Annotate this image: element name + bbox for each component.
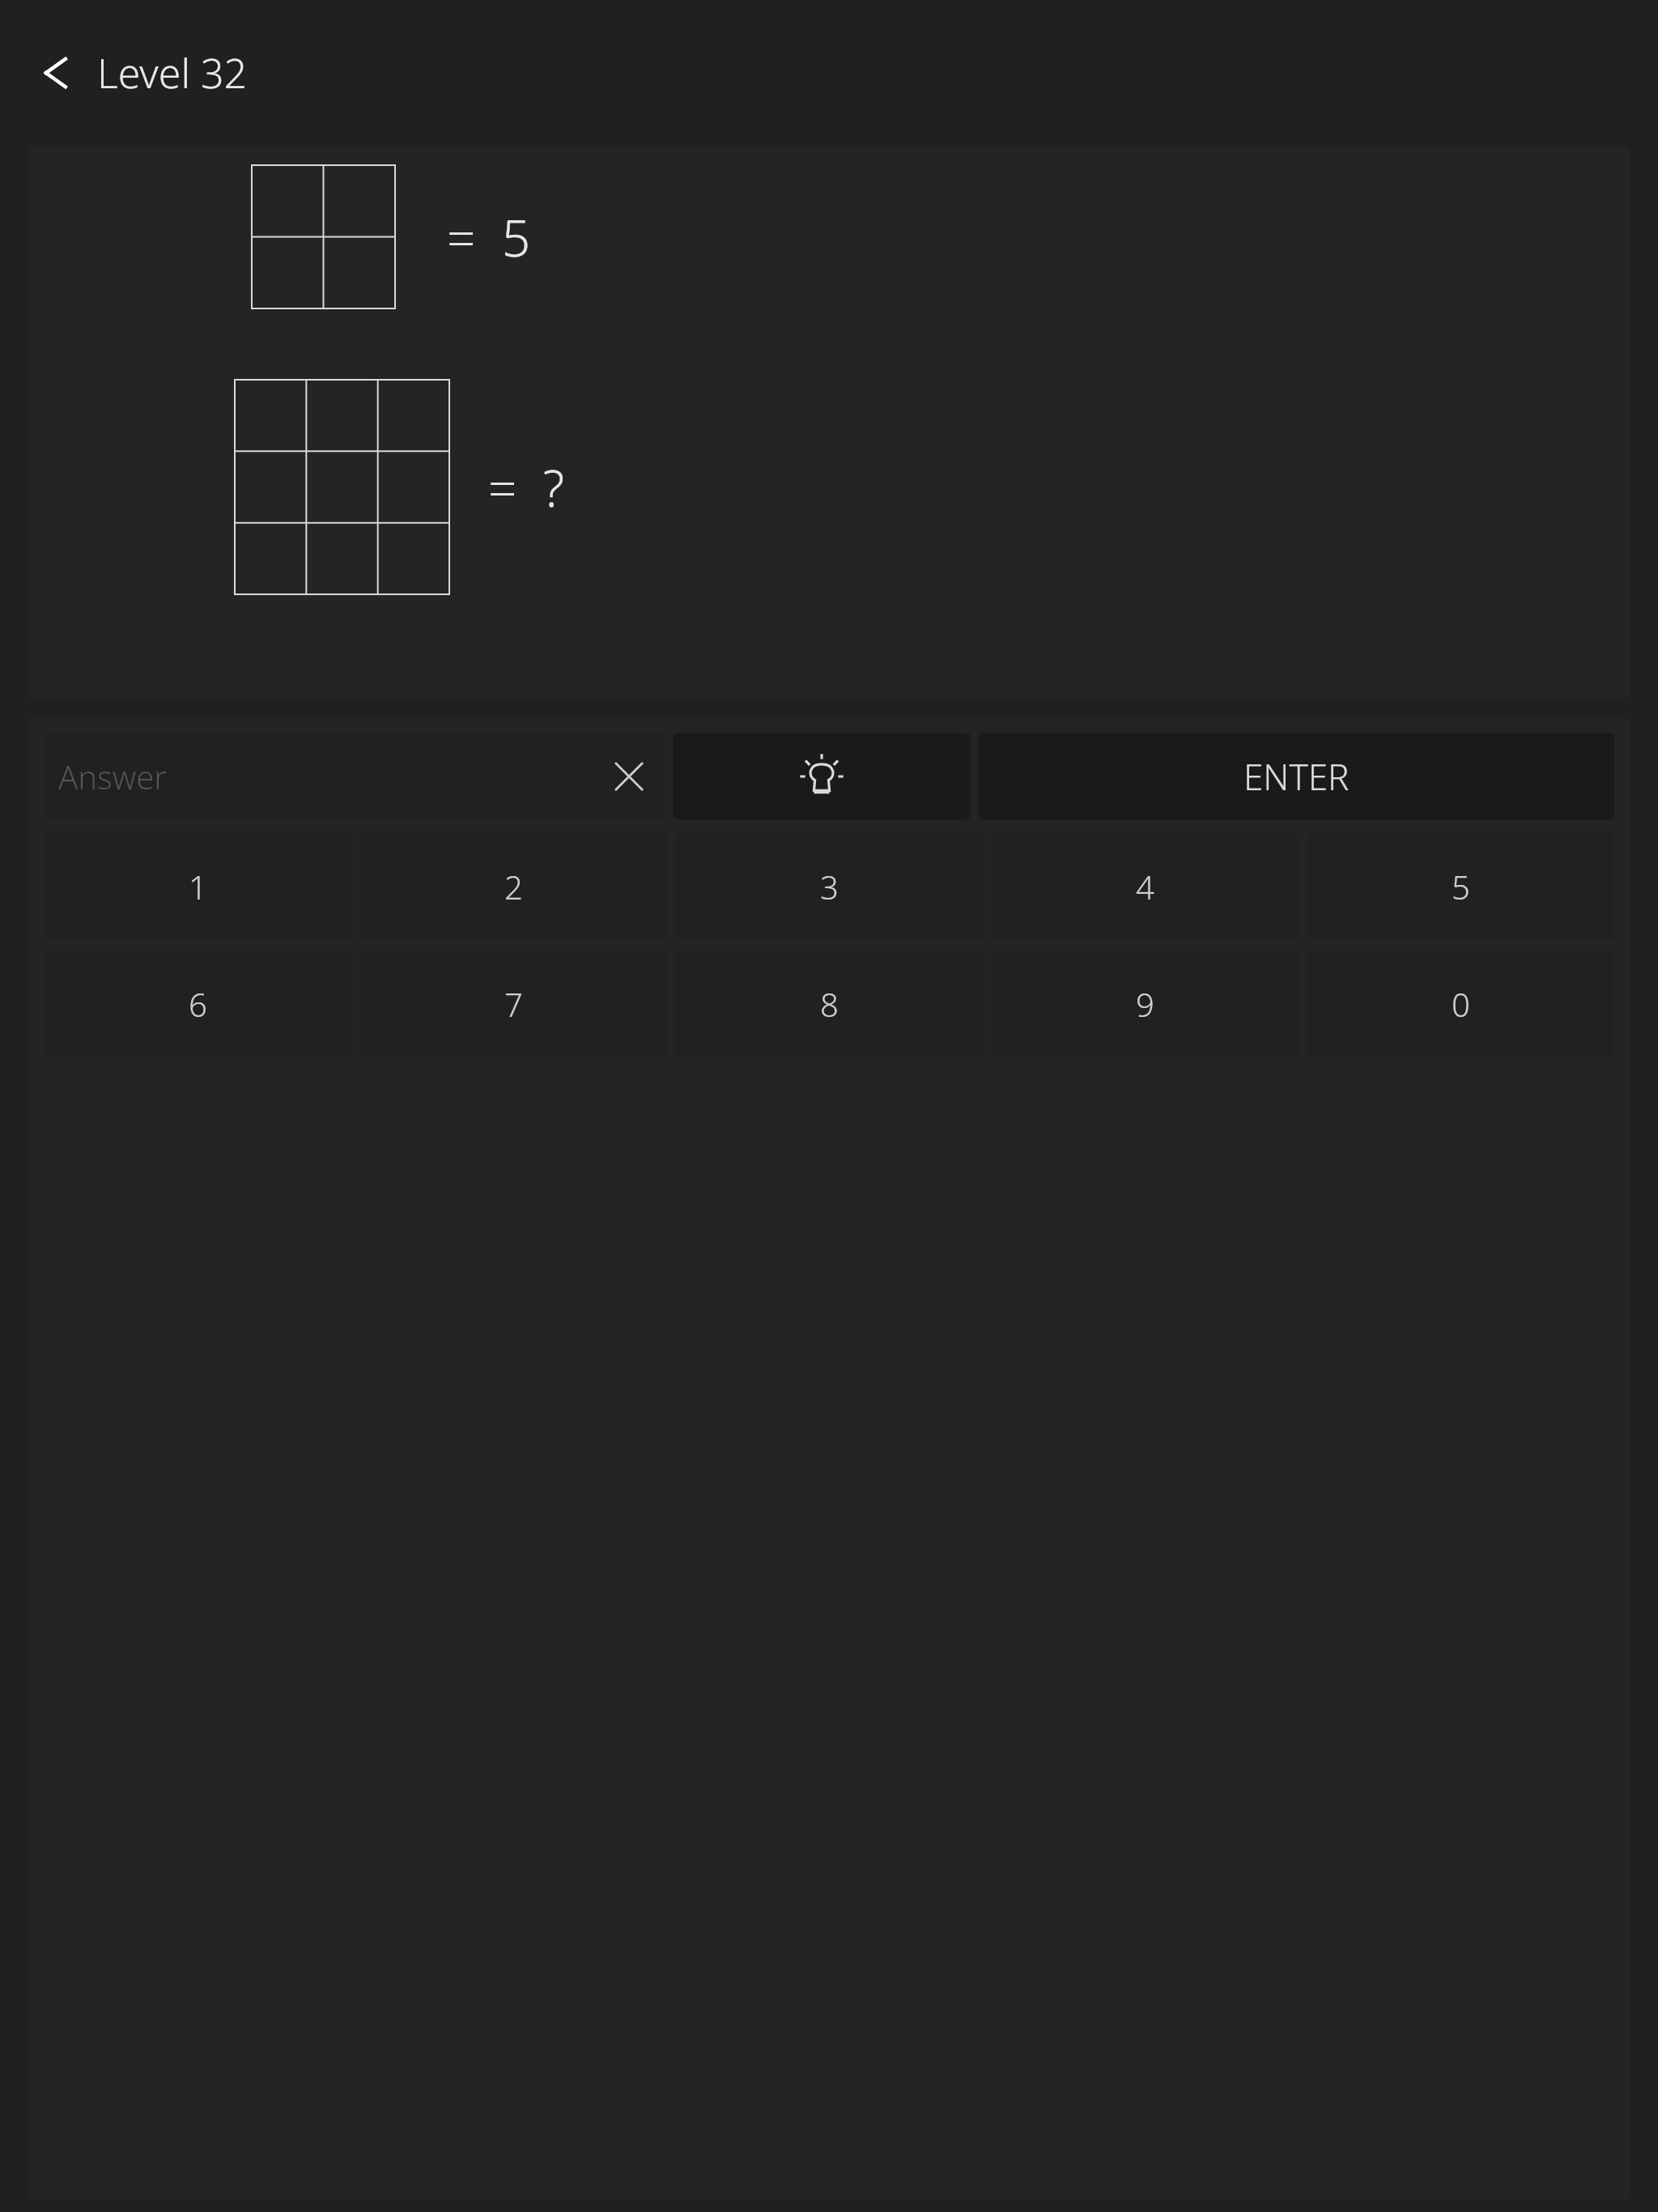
staticText: 5: [1452, 865, 1470, 908]
staticText: Level 32: [97, 45, 248, 100]
button[interactable]: 9: [991, 951, 1299, 1057]
staticText: 8: [820, 982, 839, 1026]
staticText: 0: [1452, 982, 1470, 1026]
button[interactable]: 8: [675, 951, 983, 1057]
staticText: = 5: [447, 203, 531, 271]
button[interactable]: ENTER: [979, 733, 1614, 819]
button[interactable]: 6: [44, 951, 351, 1057]
button[interactable]: 2: [359, 833, 667, 940]
button[interactable]: Back: [36, 50, 81, 96]
button[interactable]: 7: [359, 951, 667, 1057]
staticText: 4: [1136, 865, 1154, 908]
button[interactable]: 5: [1307, 833, 1614, 940]
button[interactable]: 0: [1307, 951, 1614, 1057]
button[interactable]: 1: [44, 833, 351, 940]
button[interactable]: Hint: [673, 733, 971, 819]
staticText: 9: [1136, 982, 1154, 1026]
staticText: 1: [189, 865, 207, 908]
button[interactable]: 3: [675, 833, 983, 940]
button[interactable]: 4: [991, 833, 1299, 940]
staticText: 6: [189, 982, 207, 1026]
staticText: ENTER: [1243, 752, 1350, 801]
button[interactable]: Answer: [44, 733, 665, 819]
staticText: 7: [504, 982, 523, 1026]
staticText: 3: [820, 865, 839, 908]
staticText: = ?: [488, 453, 564, 521]
button[interactable]: Clear answer: [608, 755, 650, 798]
staticText: 2: [504, 865, 523, 908]
staticText: Answer: [58, 755, 608, 798]
